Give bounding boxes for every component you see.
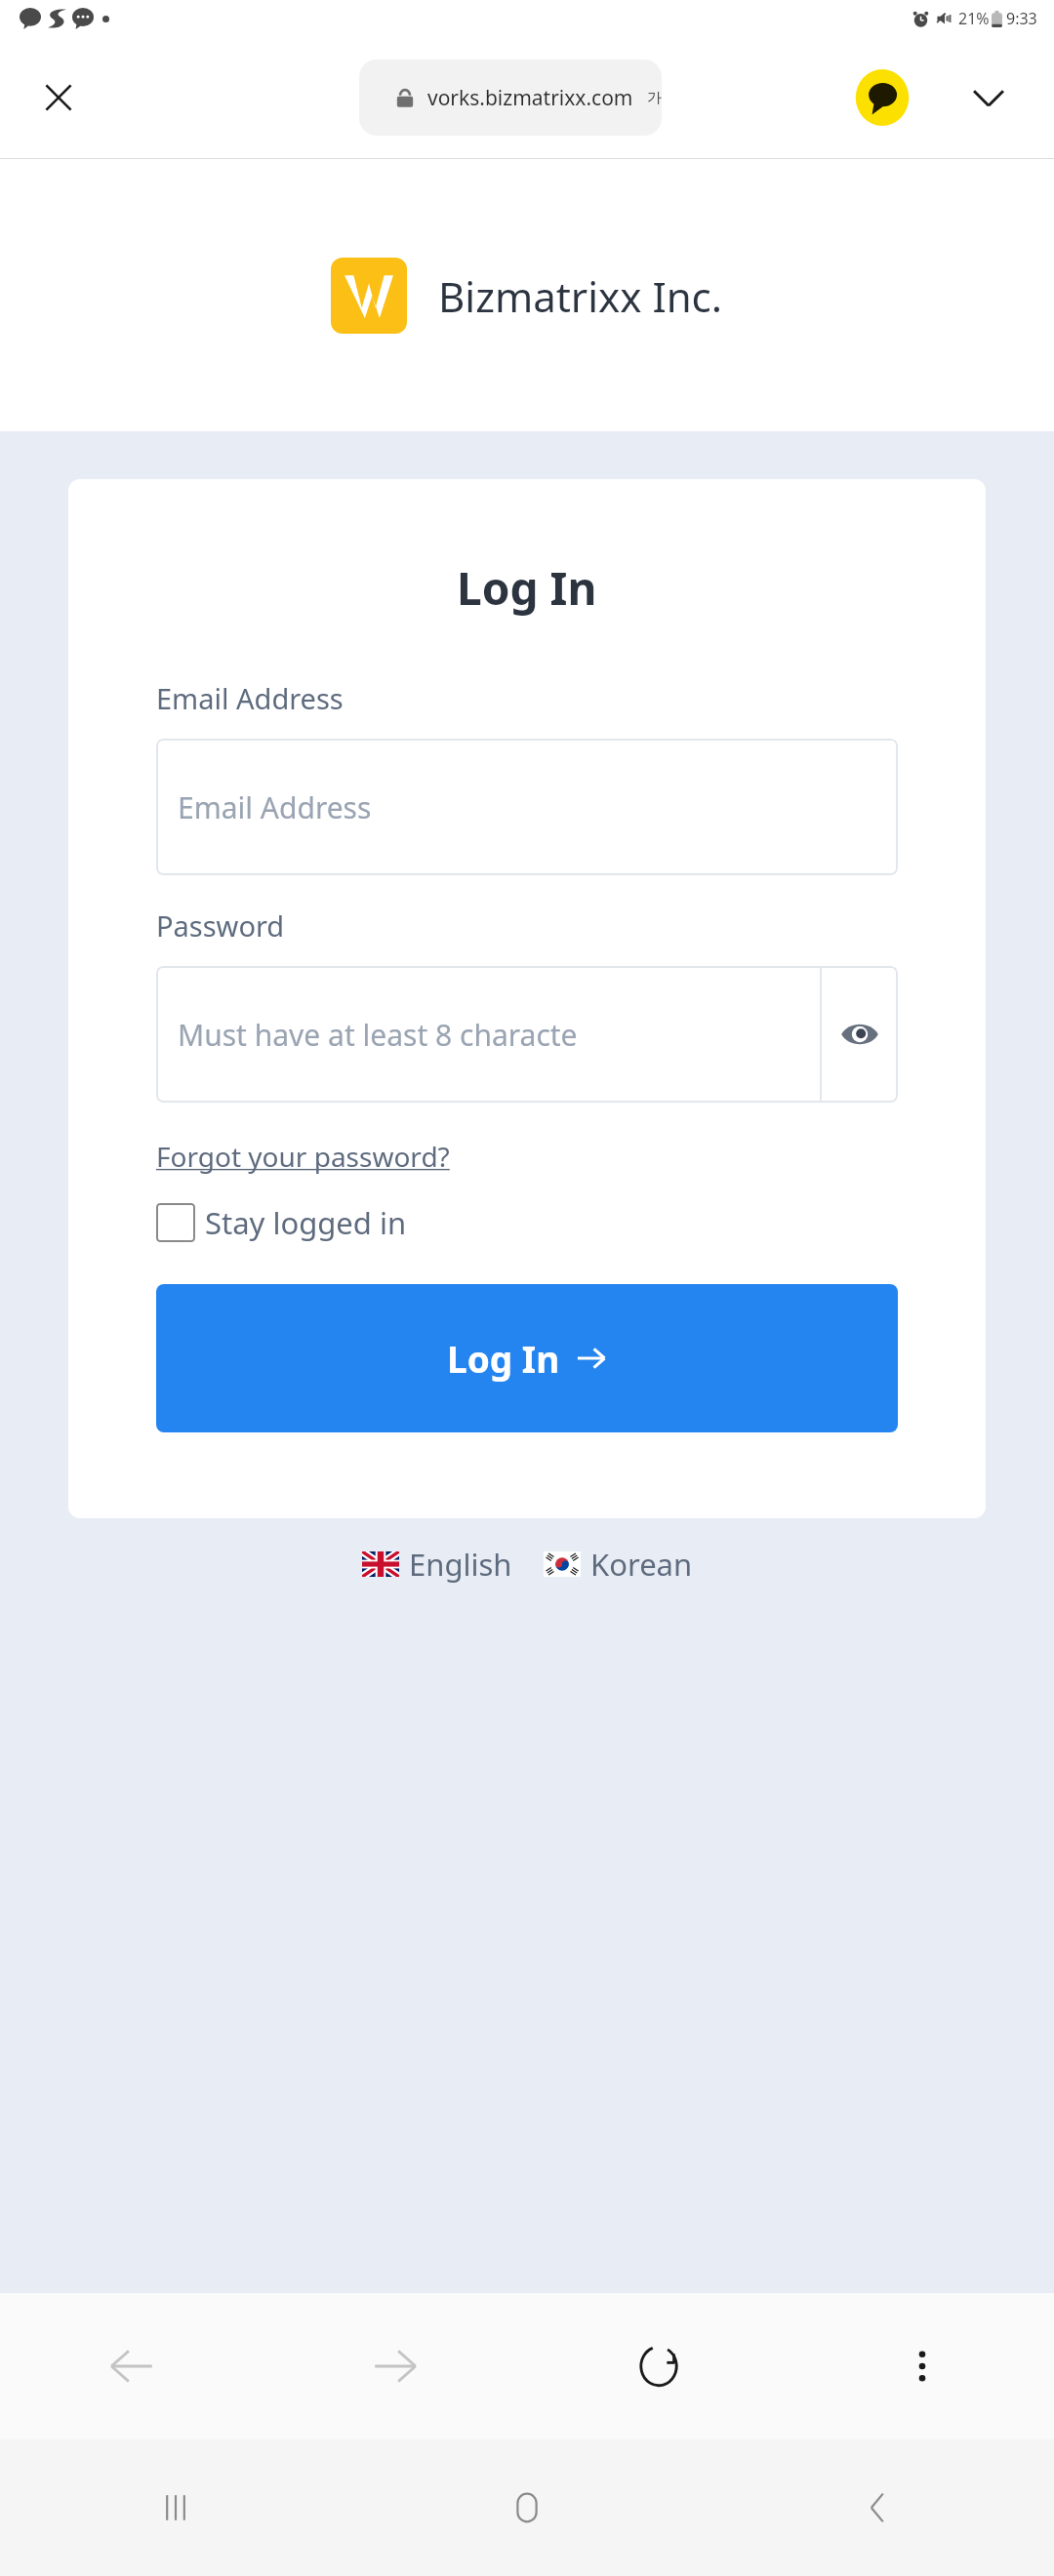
button[interactable]: Korean [544, 1544, 693, 1585]
staticText: Email Address [178, 787, 372, 827]
staticText: Bizmatrixx Inc. [438, 268, 723, 324]
staticText: Password [156, 906, 285, 945]
button[interactable]: Forward [263, 2293, 527, 2439]
button[interactable]: Email Address [156, 739, 898, 875]
staticText: 9:33 [1006, 8, 1037, 29]
staticText: Log In [447, 1334, 560, 1383]
staticText: 가 [647, 89, 662, 107]
button[interactable]: More [960, 69, 1017, 126]
button[interactable]: Recents [0, 2439, 351, 2576]
staticText: Forgot your password? [156, 1138, 450, 1175]
button[interactable]: KakaoTalk [852, 67, 912, 128]
button[interactable]: Close [33, 72, 84, 123]
staticText: Log In [457, 557, 597, 619]
staticText: Stay logged in [205, 1202, 407, 1243]
button[interactable]: vorks.bizmatrixx.com [359, 60, 662, 136]
button[interactable]: English [362, 1544, 512, 1585]
staticText: 21% [958, 8, 990, 29]
button[interactable]: Home [351, 2439, 703, 2576]
button[interactable]: Forgot your password? [156, 1138, 450, 1175]
button[interactable]: Reload [527, 2293, 790, 2439]
staticText: vorks.bizmatrixx.com [427, 84, 633, 112]
button[interactable]: Back [703, 2439, 1054, 2576]
button[interactable]: Log In [156, 1284, 898, 1432]
button[interactable]: Bizmatrixx Inc. [331, 258, 723, 334]
button[interactable]: Menu [790, 2293, 1054, 2439]
button[interactable]: Show password [822, 966, 898, 1103]
staticText: English [409, 1544, 512, 1585]
button[interactable]: Must have at least 8 characte [156, 966, 820, 1103]
staticText: Email Address [156, 679, 344, 717]
staticText: Must have at least 8 characte [178, 1015, 578, 1055]
button[interactable]: Stay logged in [156, 1202, 407, 1243]
button[interactable]: Back [0, 2293, 263, 2439]
staticText: Korean [590, 1544, 693, 1585]
